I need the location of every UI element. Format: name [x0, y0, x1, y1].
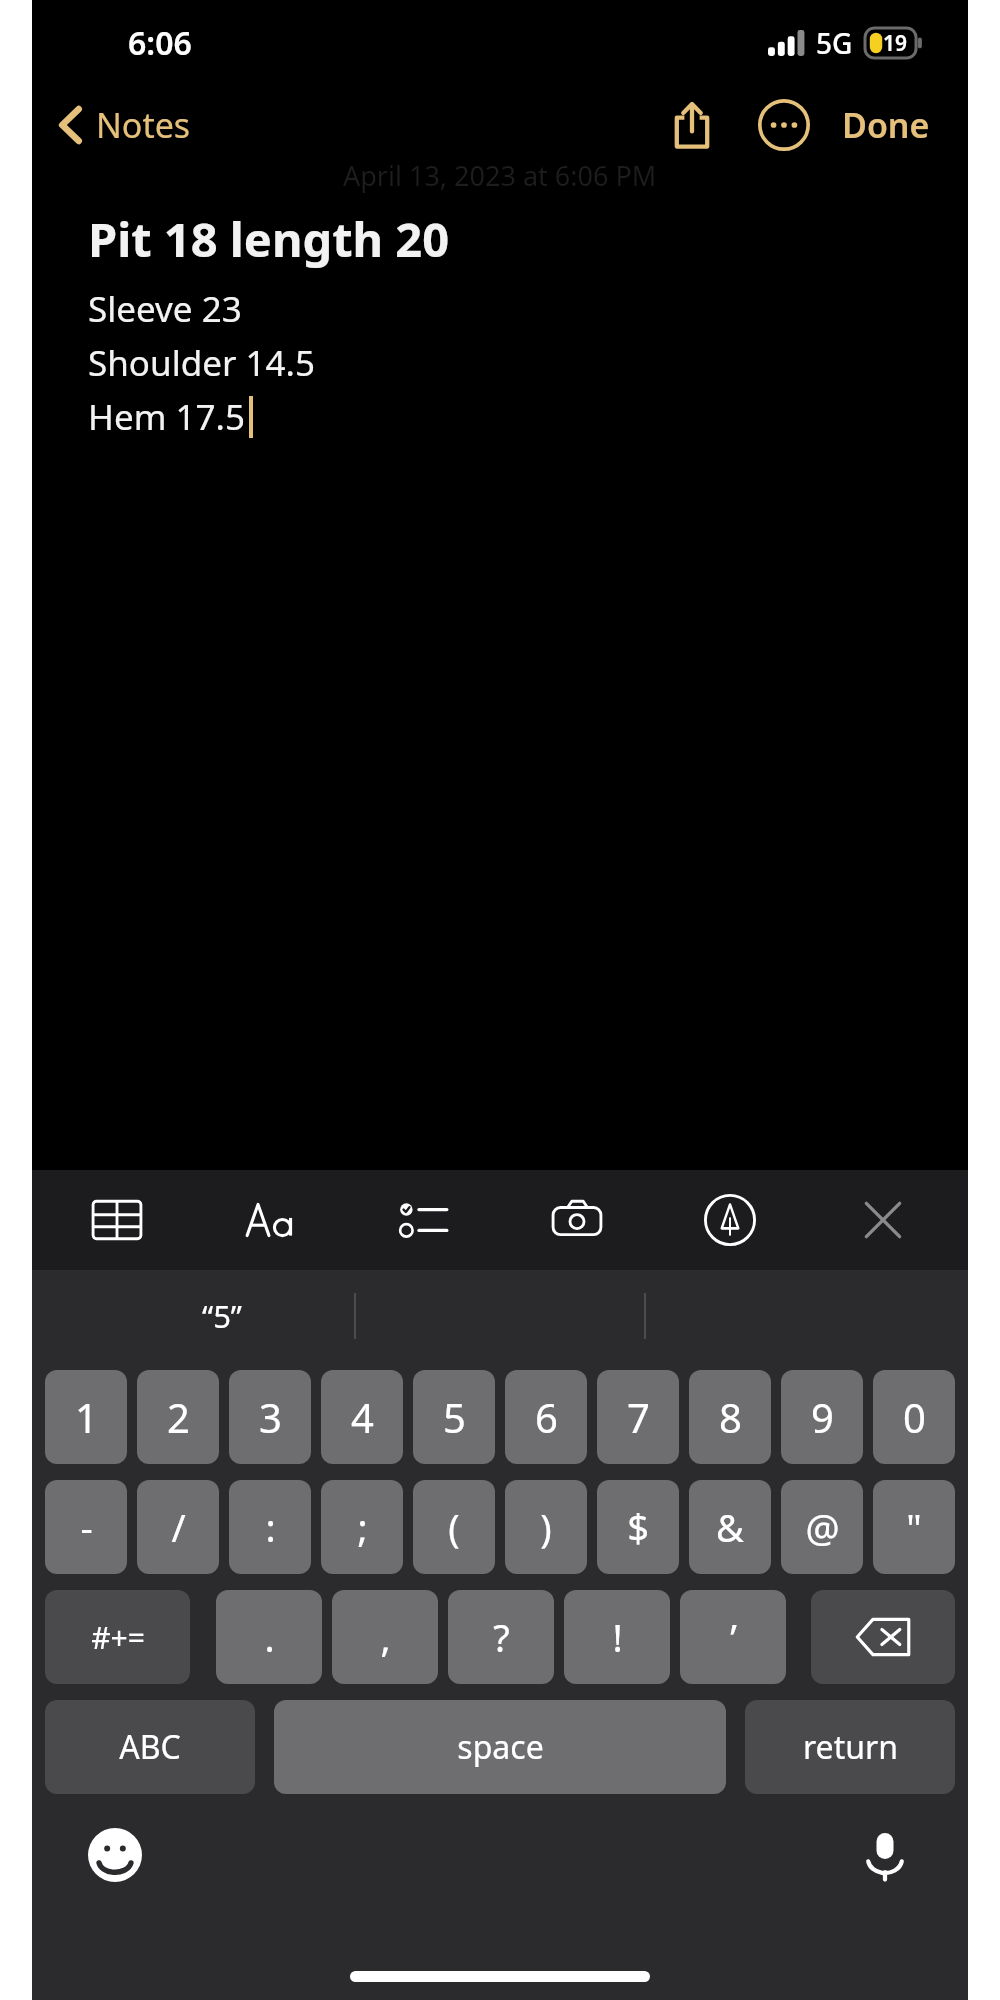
staticText: 3: [259, 1390, 282, 1444]
button[interactable]: &: [689, 1480, 771, 1574]
button[interactable]: (: [413, 1480, 495, 1574]
button[interactable]: @: [781, 1480, 863, 1574]
button[interactable]: “5”: [202, 1295, 242, 1337]
button[interactable]: Notes: [32, 94, 207, 156]
button[interactable]: Dictation: [850, 1820, 920, 1890]
staticText: return: [803, 1725, 898, 1769]
button[interactable]: 2: [137, 1370, 219, 1464]
staticText: 19: [883, 29, 908, 58]
button[interactable]: $: [597, 1480, 679, 1574]
button[interactable]: -: [45, 1480, 127, 1574]
button[interactable]: .: [216, 1590, 322, 1684]
staticText: April 13, 2023 at 6:06 PM: [343, 157, 657, 194]
button[interactable]: Emoji: [80, 1820, 150, 1890]
staticText: !: [612, 1611, 623, 1663]
staticText: 1: [75, 1390, 98, 1444]
staticText: Notes: [96, 102, 191, 148]
staticText: 7: [627, 1390, 650, 1444]
staticText: 5: [443, 1390, 466, 1444]
button[interactable]: Format text: [215, 1172, 325, 1268]
button[interactable]: 8: [689, 1370, 771, 1464]
staticText: 2: [167, 1390, 190, 1444]
staticText: 0: [903, 1390, 926, 1444]
button[interactable]: ,: [332, 1590, 438, 1684]
staticText: $: [627, 1501, 649, 1553]
staticText: :: [265, 1501, 276, 1553]
button[interactable]: 1: [45, 1370, 127, 1464]
staticText: ABC: [119, 1725, 181, 1769]
staticText: @: [805, 1501, 840, 1553]
staticText: space: [457, 1725, 544, 1769]
button[interactable]: ABC: [45, 1700, 255, 1794]
button[interactable]: ): [505, 1480, 587, 1574]
button[interactable]: #+=: [45, 1590, 190, 1684]
staticText: .: [264, 1611, 275, 1663]
staticText: #+=: [91, 1617, 145, 1658]
button[interactable]: Camera: [522, 1172, 632, 1268]
button[interactable]: 4: [321, 1370, 403, 1464]
staticText: Shoulder 14.5: [88, 339, 315, 387]
button[interactable]: 0: [873, 1370, 955, 1464]
staticText: 6: [535, 1390, 558, 1444]
staticText: Sleeve 23: [88, 285, 242, 333]
button[interactable]: ": [873, 1480, 955, 1574]
staticText: ’: [730, 1611, 737, 1663]
staticText: ": [906, 1501, 922, 1553]
button[interactable]: 6: [505, 1370, 587, 1464]
button[interactable]: Done: [832, 92, 940, 158]
button[interactable]: 9: [781, 1370, 863, 1464]
button[interactable]: 7: [597, 1370, 679, 1464]
button[interactable]: ;: [321, 1480, 403, 1574]
button[interactable]: ’: [680, 1590, 786, 1684]
button[interactable]: Checklist: [368, 1172, 478, 1268]
button[interactable]: /: [137, 1480, 219, 1574]
staticText: &: [716, 1501, 744, 1553]
staticText: ?: [493, 1611, 510, 1663]
staticText: ): [540, 1501, 552, 1553]
button[interactable]: space: [274, 1700, 726, 1794]
staticText: (: [448, 1501, 460, 1553]
staticText: ,: [380, 1611, 391, 1663]
button[interactable]: :: [229, 1480, 311, 1574]
staticText: 9: [811, 1390, 834, 1444]
button[interactable]: Share: [654, 87, 730, 163]
staticText: /: [171, 1501, 186, 1553]
button[interactable]: return: [745, 1700, 955, 1794]
button[interactable]: 5: [413, 1370, 495, 1464]
button[interactable]: More options: [746, 87, 822, 163]
button[interactable]: Close keyboard: [828, 1172, 938, 1268]
button[interactable]: ?: [448, 1590, 554, 1684]
button[interactable]: Delete: [811, 1590, 955, 1684]
staticText: Pit 18 length 20: [88, 207, 450, 271]
button[interactable]: Table: [62, 1172, 172, 1268]
staticText: 5G: [816, 24, 853, 62]
button[interactable]: Markup: [675, 1172, 785, 1268]
staticText: ;: [357, 1501, 368, 1553]
button[interactable]: !: [564, 1590, 670, 1684]
staticText: 6:06: [128, 21, 192, 65]
staticText: 4: [351, 1390, 374, 1444]
staticText: -: [80, 1501, 93, 1553]
staticText: Hem 17.5: [88, 393, 245, 441]
staticText: 8: [719, 1390, 742, 1444]
button[interactable]: 3: [229, 1370, 311, 1464]
staticText: Done: [842, 102, 930, 148]
